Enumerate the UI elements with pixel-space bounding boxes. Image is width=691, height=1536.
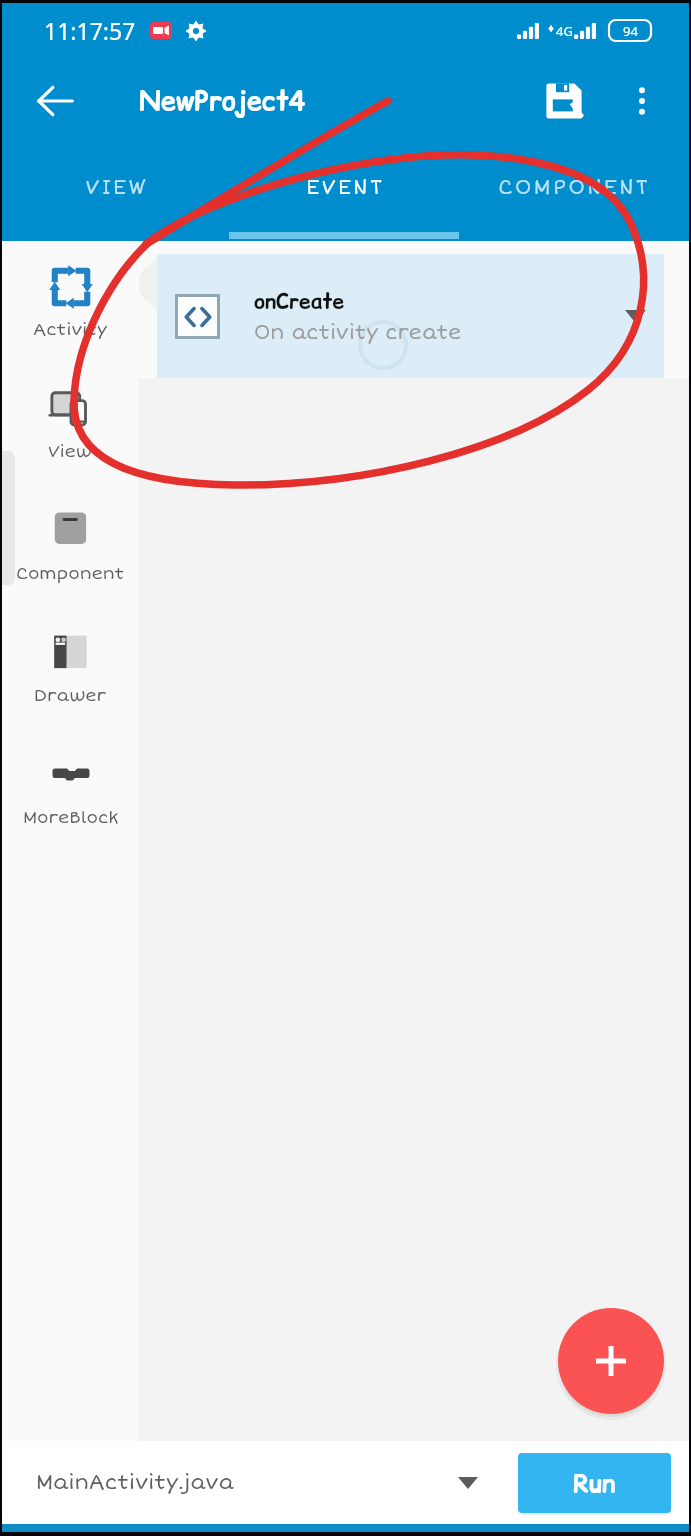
button[interactable]: MainActivity.java (36, 1441, 446, 1524)
staticText: Run (573, 1466, 616, 1501)
staticText: EVENT (306, 175, 385, 200)
staticText: 94 (623, 22, 638, 40)
staticText: 4G (556, 22, 573, 40)
button[interactable]: Activity (2, 254, 139, 376)
button[interactable]: Select file (446, 1461, 490, 1505)
staticText: MoreBlock (23, 807, 119, 828)
staticText: Drawer (34, 685, 107, 706)
button[interactable]: Back (26, 72, 84, 130)
staticText: COMPONENT (498, 175, 651, 200)
button[interactable]: onCreate (157, 254, 664, 378)
button[interactable]: Add event (558, 1308, 664, 1414)
staticText: MainActivity.java (36, 1470, 234, 1495)
staticText: View (48, 441, 93, 462)
staticText: onCreate (254, 287, 345, 316)
staticText: Activity (33, 319, 108, 340)
button[interactable]: COMPONENT (460, 143, 689, 232)
button[interactable]: Save (533, 70, 595, 132)
button[interactable]: More options (617, 76, 667, 126)
button[interactable]: Drawer (2, 620, 139, 742)
staticText: On activity create (254, 320, 462, 345)
button[interactable]: Run (518, 1453, 671, 1513)
staticText: NewProject4 (139, 82, 306, 120)
button[interactable]: MoreBlock (2, 742, 139, 864)
staticText: 11:17:57 (44, 15, 136, 46)
button[interactable]: EVENT (231, 143, 460, 232)
staticText: VIEW (85, 175, 149, 200)
button[interactable]: Component (2, 498, 139, 620)
staticText: Component (16, 563, 125, 584)
button[interactable]: VIEW (2, 143, 231, 232)
button[interactable]: View (2, 376, 139, 498)
